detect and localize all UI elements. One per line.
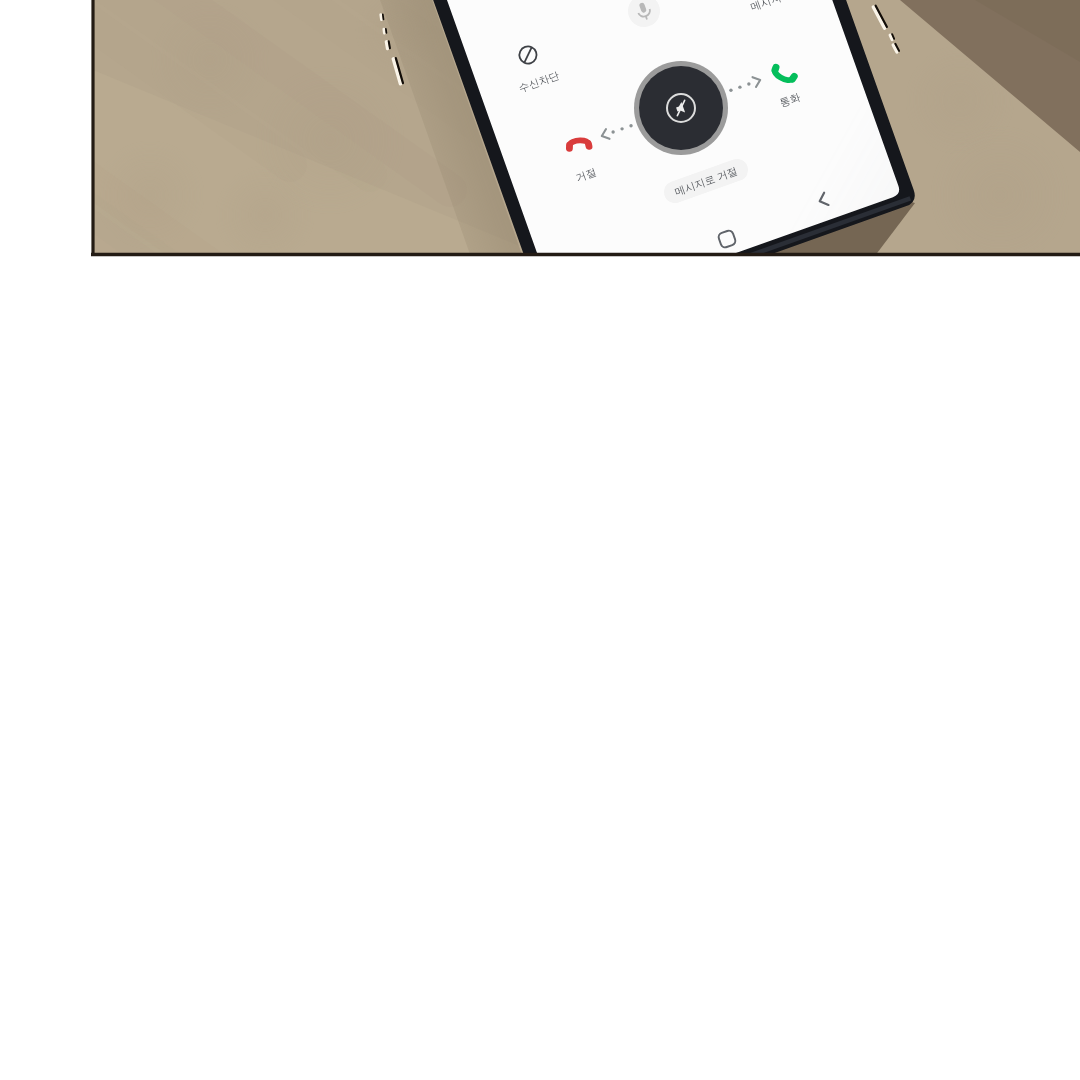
button[interactable]: Decline with message (660, 164, 756, 200)
button[interactable]: Answer call (760, 48, 824, 120)
button[interactable]: Block caller (506, 34, 572, 100)
button[interactable]: Decline call (552, 118, 616, 190)
button[interactable]: Back (804, 182, 844, 222)
button[interactable]: Mute ringtone (630, 58, 732, 160)
button[interactable]: Mute microphone (620, 0, 672, 36)
button[interactable]: Home (706, 220, 750, 260)
